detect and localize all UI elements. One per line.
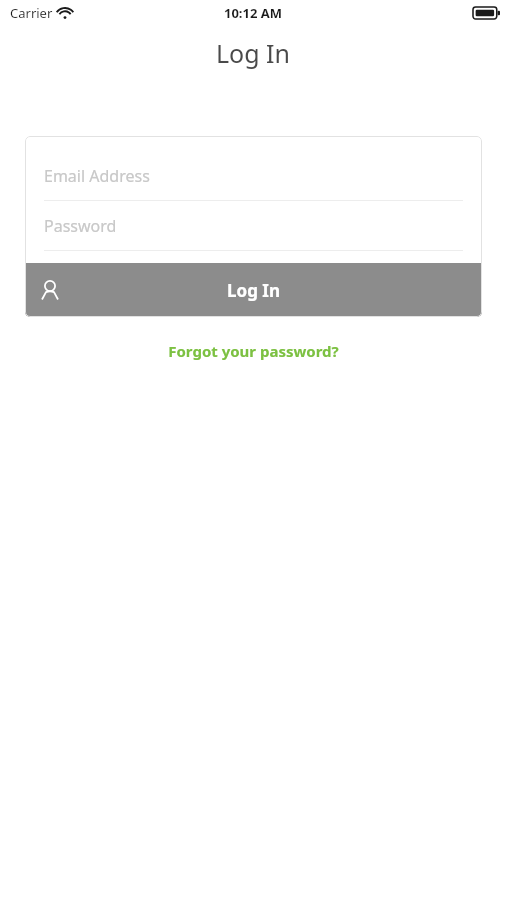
staticText: Email Address: [44, 165, 150, 187]
staticText: Carrier: [10, 4, 53, 22]
staticText: Log In: [216, 36, 291, 70]
button[interactable]: Email Address: [25, 136, 482, 201]
button[interactable]: Password: [25, 201, 482, 251]
button[interactable]: Forgot your password?: [156, 337, 351, 365]
staticText: Password: [44, 215, 117, 237]
staticText: 10:12 AM: [224, 4, 283, 22]
button[interactable]: Account: [25, 263, 482, 317]
staticText: Forgot your password?: [168, 341, 339, 361]
other: Account: [40, 280, 60, 301]
staticText: Log In: [227, 279, 280, 302]
